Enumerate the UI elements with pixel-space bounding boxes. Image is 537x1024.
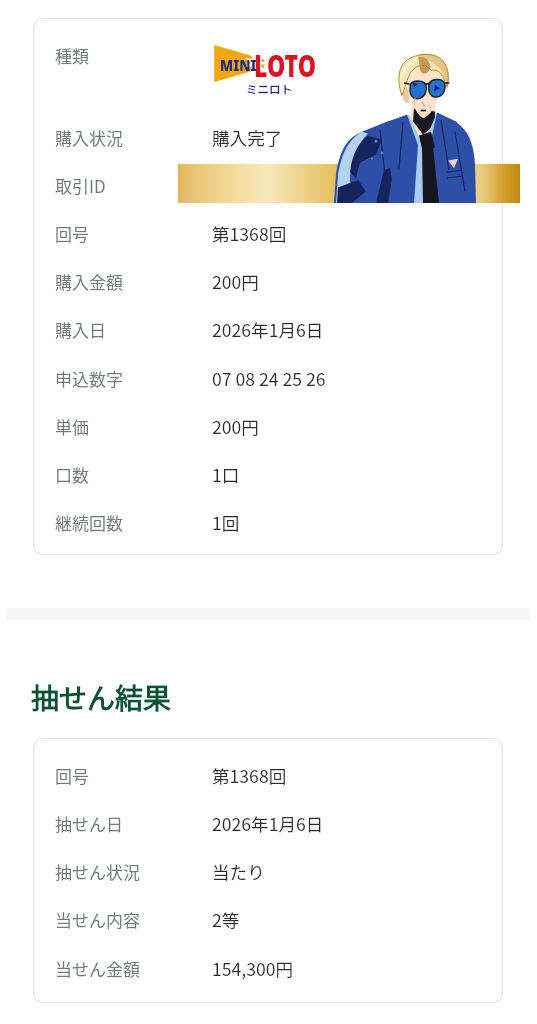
staticText: 単価 [55,414,89,439]
staticText: 抽せん結果 [31,677,172,718]
staticText: 1口 [212,462,240,487]
staticText: 当せん金額 [55,956,140,981]
staticText: 154,300円 [212,956,294,981]
staticText: 回号 [55,221,89,246]
staticText: 取引ID [55,173,106,198]
button[interactable]: 単価 [33,401,503,449]
button[interactable]: 購入日 [33,304,503,352]
button[interactable]: 申込数字 [33,353,503,401]
staticText: 申込数字 [55,366,123,391]
staticText: 購入完了 [212,125,283,150]
staticText: LOTO [254,44,317,86]
button[interactable]: 継続回数 [33,497,503,545]
button[interactable]: 購入金額 [33,256,503,304]
staticText: 第1368回 [212,763,287,788]
button[interactable]: 抽せん状況 [33,846,503,894]
button[interactable]: 取引ID [33,160,503,208]
staticText: 購入金額 [55,269,123,294]
staticText: MINI [220,54,257,75]
staticText: 抽せん状況 [55,859,140,884]
staticText: 2等 [212,907,240,932]
button[interactable]: 当せん内容 [33,894,503,942]
staticText: 2026年1月6日 [212,317,324,342]
staticText: 2026年1月6日 [212,811,324,836]
button[interactable]: 回号 [33,750,503,798]
staticText: 継続回数 [55,510,123,535]
staticText: 種類 [55,43,89,68]
button[interactable]: 当せん金額 [33,943,503,991]
staticText: 07 08 24 25 26 [212,366,326,391]
staticText: 回号 [55,763,89,788]
button[interactable]: 種類 [33,30,503,78]
staticText: 当せん内容 [55,907,140,932]
staticText: 200円 [212,414,259,439]
staticText: 1回 [212,510,240,535]
staticText: 抽せん日 [55,811,123,836]
staticText: 口数 [55,462,89,487]
button[interactable]: 回号 [33,208,503,256]
staticText: ミニロト [246,81,292,97]
staticText: 200円 [212,269,259,294]
button[interactable]: 抽せん日 [33,798,503,846]
button[interactable]: 購入状況 [33,112,503,160]
staticText: 当たり [212,859,265,884]
button[interactable]: 口数 [33,449,503,497]
staticText: 購入状況 [55,125,123,150]
staticText: 購入日 [55,317,106,342]
button[interactable]: ミニロト [211,42,321,96]
staticText: 第1368回 [212,221,287,246]
